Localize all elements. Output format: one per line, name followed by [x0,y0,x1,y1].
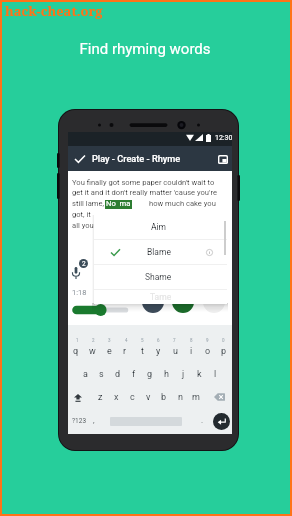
button[interactable]: y [151,344,165,358]
button[interactable]: b [158,390,170,404]
staticText: n [178,392,183,403]
staticText: b [161,392,167,403]
staticText: get it and it don't really matter 'cause… [72,188,217,197]
staticText: v [146,392,151,403]
staticText: , [93,416,95,425]
button[interactable]: w [85,344,99,358]
button[interactable]: Enter [213,413,230,430]
staticText: h [164,369,169,380]
staticText: g [147,369,153,380]
button[interactable]: ?123 [68,413,90,429]
staticText: 0 [222,338,225,343]
button[interactable]: a [78,367,92,381]
staticText: Play - Create - Rhyme [92,153,181,164]
staticText: all you [72,221,94,230]
staticText: 1:18 [72,288,87,297]
button[interactable]: q [69,344,83,358]
button[interactable]: Aim [94,215,227,239]
staticText: got, it [72,210,93,219]
staticText: l [214,369,217,380]
button[interactable]: p [217,344,231,358]
staticText: w [89,346,96,357]
button[interactable]: l [208,367,222,381]
staticText: Blame [147,247,171,257]
staticText: still lame, [72,199,104,208]
button[interactable]: j [176,367,190,381]
staticText: s [99,369,104,380]
button[interactable]: Backspace [212,391,226,403]
staticText: 12:30 [215,134,232,142]
staticText: a [83,369,88,380]
button[interactable]: Play [172,291,194,313]
button[interactable]: Shift [71,391,84,404]
button[interactable]: i [184,344,198,358]
staticText: 6 [157,338,160,343]
staticText: Tame [150,292,172,302]
staticText: 5 [141,338,144,343]
button[interactable]: c [126,390,138,404]
staticText: d [115,369,121,380]
staticText: Shame [145,272,172,282]
staticText: q [73,346,79,357]
button[interactable]: Record [142,291,164,313]
staticText: how much cake you [149,199,216,208]
button[interactable]: m [190,390,202,404]
button[interactable]: k [192,367,206,381]
staticText: o [205,346,211,357]
button[interactable]: f [127,367,141,381]
staticText: 2 [82,260,86,268]
staticText: You finally got some paper couldn't wait… [72,178,215,187]
staticText: 2 [92,338,95,343]
button[interactable]: n [174,390,186,404]
staticText: k [197,369,202,380]
button[interactable]: o [201,344,215,358]
staticText: hack-cheat.org [5,2,103,20]
staticText: t [141,346,144,357]
button[interactable]: v [142,390,154,404]
button[interactable]: z [94,390,106,404]
button[interactable]: Blame [94,240,227,264]
staticText: e [107,346,112,357]
staticText: 4 [125,338,128,343]
button[interactable]: g [143,367,157,381]
button[interactable]: t [135,344,149,358]
button[interactable]: Shame [94,265,227,289]
staticText: . [201,416,204,425]
staticText: x [114,392,119,403]
staticText: p [221,346,227,357]
staticText: 9 [206,338,209,343]
staticText: 3 [108,338,111,343]
staticText: 1 [76,338,79,343]
button[interactable]: u [168,344,182,358]
button[interactable]: e [102,344,116,358]
staticText: c [130,392,135,403]
staticText: u [173,346,178,357]
staticText: m [192,392,200,403]
button[interactable]: d [111,367,125,381]
button[interactable]: h [159,367,173,381]
staticText: No ma [106,199,131,208]
staticText: j [182,369,185,380]
staticText: ?123 [72,417,87,425]
button[interactable]: r [118,344,132,358]
staticText: 7 [173,338,176,343]
staticText: y [156,346,161,357]
button[interactable]: x [110,390,122,404]
staticText: Aim [151,222,167,232]
staticText: i [190,346,193,357]
button[interactable]: s [94,367,108,381]
button[interactable]: Stop [203,291,225,313]
button[interactable]: Picture in picture [216,152,230,166]
button[interactable]: Done [72,151,88,167]
staticText: r [123,346,127,357]
staticText: 8 [190,338,193,343]
staticText: Find rhyming words [1,40,289,58]
staticText: f [132,369,136,380]
staticText: z [98,392,103,403]
